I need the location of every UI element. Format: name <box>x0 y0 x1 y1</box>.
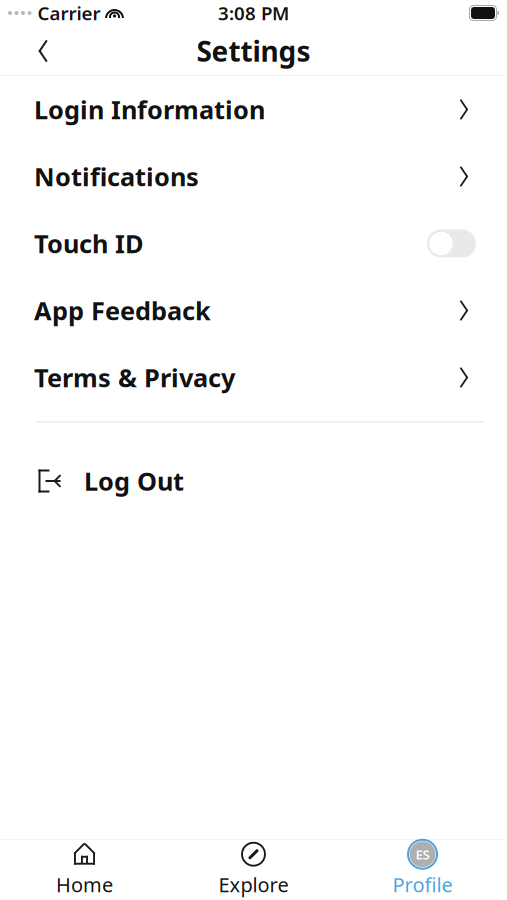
staticText: Explore <box>218 871 288 898</box>
staticText: App Feedback <box>34 294 211 327</box>
staticText: Notifications <box>34 160 199 193</box>
staticText: Login Information <box>34 93 265 126</box>
button[interactable]: Terms & Privacy <box>0 344 507 411</box>
staticText: Log Out <box>84 464 184 498</box>
staticText: ES <box>415 845 429 863</box>
button[interactable]: Explore <box>169 840 338 900</box>
button[interactable]: Back <box>18 29 68 73</box>
button[interactable]: App Feedback <box>0 277 507 344</box>
staticText: Carrier <box>37 1 100 25</box>
button[interactable]: Touch ID <box>0 210 507 277</box>
staticText: Profile <box>392 871 452 898</box>
button[interactable]: Log Out <box>0 449 507 513</box>
staticText: Touch ID <box>34 227 144 260</box>
staticText: Terms & Privacy <box>34 361 235 394</box>
staticText: Settings <box>196 32 310 70</box>
staticText: 3:08 PM <box>218 1 289 25</box>
button[interactable]: Login Information <box>0 76 507 143</box>
button[interactable]: Notifications <box>0 143 507 210</box>
staticText: Home <box>56 871 113 898</box>
button[interactable]: Home <box>0 840 169 900</box>
button[interactable]: ES <box>338 840 507 900</box>
